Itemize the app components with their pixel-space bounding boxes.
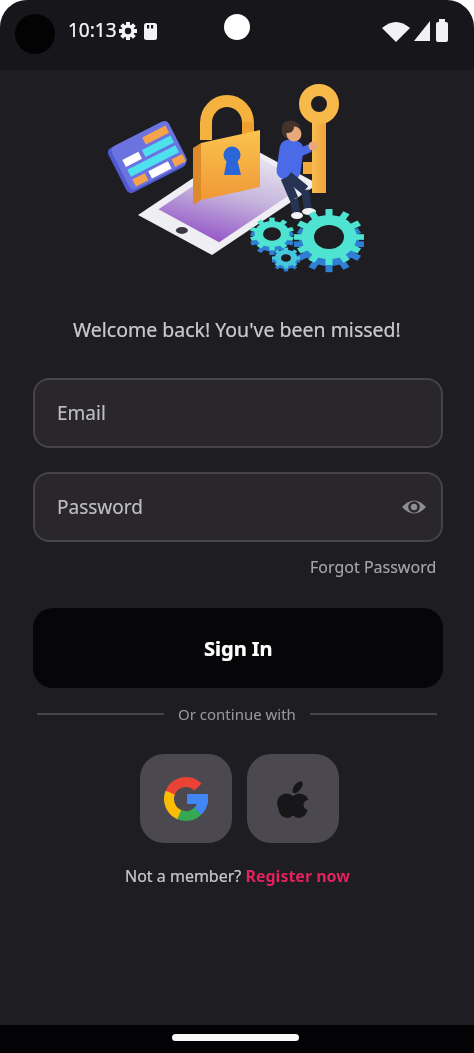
button[interactable] [140, 754, 232, 843]
staticText: Sign In [204, 635, 273, 662]
staticText: Not a member? Register now [125, 865, 350, 887]
button[interactable]: Sign In [33, 608, 443, 688]
staticText: 10:13 [68, 17, 117, 43]
button[interactable]: Not a member? Register now [0, 865, 474, 887]
button[interactable]: Forgot Password [310, 556, 437, 578]
button[interactable] [247, 754, 339, 843]
staticText: Or continue with [178, 704, 296, 724]
button[interactable]: Password [33, 472, 443, 542]
button[interactable]: Email [33, 378, 443, 448]
staticText: Email [57, 400, 106, 426]
staticText: Password [57, 494, 143, 520]
staticText: Welcome back! You've been missed! [73, 316, 401, 343]
